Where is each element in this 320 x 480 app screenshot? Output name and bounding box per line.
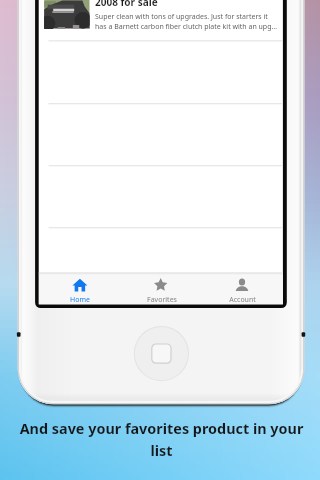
button[interactable]: Account — [202, 272, 283, 304]
button[interactable]: Home — [39, 272, 121, 304]
staticText: Account — [229, 295, 256, 305]
staticText: 2008 for sale — [95, 0, 158, 9]
staticText: has a Barnett carbon fiber clutch plate … — [95, 22, 278, 32]
button[interactable]: Favorites — [121, 272, 202, 304]
staticText: Super clean with tons of upgrades. Just … — [95, 12, 268, 22]
staticText: And save your favorites product in your … — [17, 419, 306, 460]
staticText: Favorites — [147, 295, 177, 305]
button[interactable] — [39, 0, 283, 41]
staticText: Home — [70, 295, 90, 305]
